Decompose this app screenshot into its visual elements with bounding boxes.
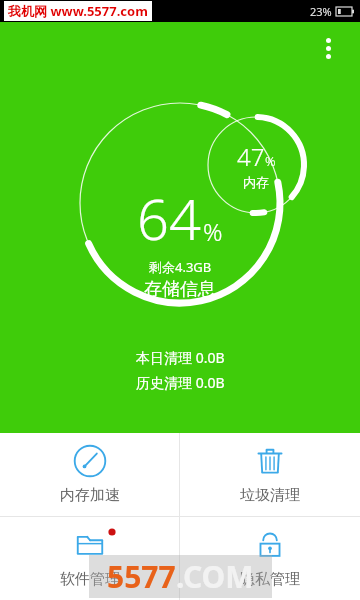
staticText: 5577: [107, 556, 176, 597]
staticText: 64: [137, 180, 201, 256]
staticText: 隐私管理: [240, 570, 300, 589]
staticText: 存储信息: [144, 278, 216, 301]
staticText: 我机网 www.5577.com: [8, 2, 148, 20]
staticText: 垃圾清理: [240, 486, 300, 505]
button[interactable]: 软件管理: [0, 517, 179, 600]
staticText: .COM: [176, 556, 254, 597]
staticText: 本日清理 0.0B: [136, 348, 225, 367]
staticText: 47: [237, 140, 265, 173]
staticText: 软件管理: [60, 570, 120, 589]
staticText: 内存加速: [60, 486, 120, 505]
staticText: 剩余4.3GB: [149, 258, 212, 276]
button[interactable]: 隐私管理: [180, 517, 360, 600]
staticText: 内存: [243, 174, 269, 190]
staticText: 23%: [310, 4, 332, 19]
button[interactable]: 垃圾清理: [180, 433, 360, 516]
staticText: 历史清理 0.0B: [136, 373, 225, 392]
staticText: %: [265, 152, 276, 170]
button[interactable]: 内存加速: [0, 433, 179, 516]
staticText: %: [203, 215, 223, 248]
button[interactable]: More options: [310, 30, 346, 66]
